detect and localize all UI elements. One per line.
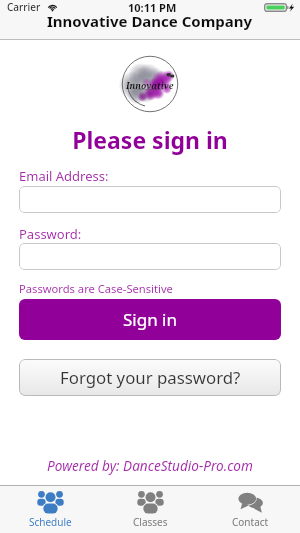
staticText: Innovative Dance Company xyxy=(47,11,253,31)
other: Battery charging xyxy=(264,3,294,12)
staticText: Powered by: DanceStudio-Pro.com xyxy=(0,456,300,475)
other: Classes xyxy=(137,490,164,513)
staticText: Contact xyxy=(232,515,269,529)
button[interactable]: Schedule xyxy=(0,486,100,533)
button[interactable]: Classes xyxy=(100,486,200,533)
staticText: Innovative xyxy=(126,80,174,92)
staticText: Schedule xyxy=(29,515,72,529)
other: Innovative Dance Company logo xyxy=(117,56,183,112)
staticText: Classes xyxy=(133,515,168,529)
staticText: Email Address: xyxy=(19,167,109,185)
staticText: Carrier xyxy=(7,0,41,14)
staticText: Please sign in xyxy=(0,124,300,155)
staticText: Passwords are Case-Sensitive xyxy=(19,281,173,296)
staticText: Forgot your password? xyxy=(60,366,241,389)
staticText: Sign in xyxy=(123,308,177,331)
other: Schedule xyxy=(37,490,64,513)
other: Wi-Fi signal xyxy=(47,3,58,12)
button[interactable]: Sign in xyxy=(19,299,281,340)
staticText: Password: xyxy=(19,225,82,243)
button[interactable]: Contact xyxy=(200,486,300,533)
button[interactable]: Forgot your password? xyxy=(19,359,281,396)
other: Contact xyxy=(237,490,264,513)
button[interactable] xyxy=(19,186,281,213)
button[interactable] xyxy=(19,243,281,270)
staticText: 10:11 PM xyxy=(128,0,177,14)
